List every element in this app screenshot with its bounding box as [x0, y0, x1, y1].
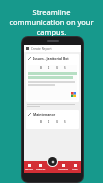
button[interactable]: B	[39, 120, 43, 124]
staticText: I	[48, 120, 50, 124]
button[interactable]: Schedule	[35, 161, 46, 173]
staticText: B	[40, 120, 42, 124]
button[interactable]: S	[63, 66, 67, 70]
staticText: Streamline communication on your campus.	[6, 7, 97, 37]
button[interactable]: Maintenance	[26, 110, 79, 129]
button[interactable]: S	[63, 120, 67, 124]
button[interactable]: More	[69, 161, 81, 173]
button[interactable]: Reports	[24, 161, 35, 173]
button[interactable]: Messages	[57, 161, 69, 173]
staticText: S	[64, 120, 66, 124]
button[interactable]: I	[47, 120, 51, 124]
staticText: U	[56, 120, 59, 124]
staticText: Reports	[25, 168, 34, 171]
button[interactable]: U	[55, 66, 59, 70]
staticText: Maintenance	[33, 112, 56, 117]
staticText: Create Report	[31, 47, 52, 51]
staticText: More	[72, 168, 78, 171]
staticText: Messages	[58, 168, 69, 171]
staticText: I	[48, 66, 50, 70]
button[interactable]: I	[47, 66, 51, 70]
button[interactable]: U	[55, 120, 59, 124]
staticText: U	[56, 66, 59, 70]
staticText: Schedule	[36, 168, 46, 171]
staticText: S	[64, 66, 66, 70]
button[interactable]: Add report	[48, 157, 57, 166]
button[interactable]: B	[39, 66, 43, 70]
staticText: Issues - Janitorial Bot	[33, 56, 69, 61]
button[interactable]: Create Report	[24, 45, 81, 52]
button[interactable]: Issues - Janitorial Bot	[26, 54, 79, 102]
staticText: B	[40, 66, 42, 70]
